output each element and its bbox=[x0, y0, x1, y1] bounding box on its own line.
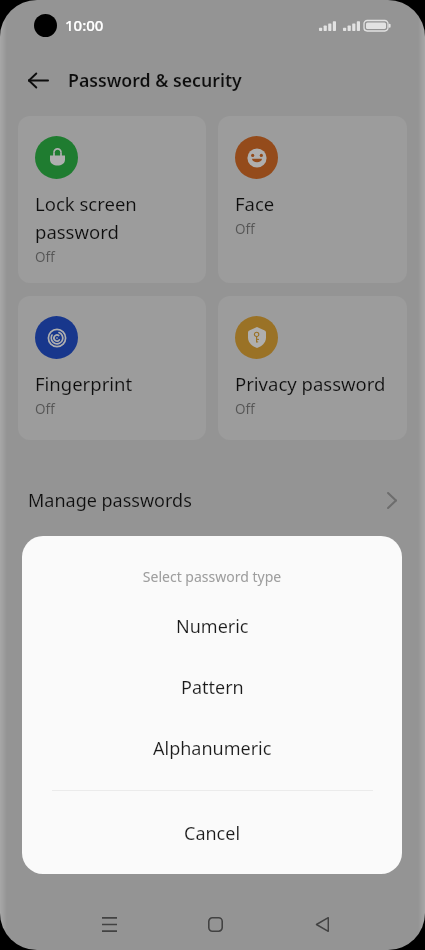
button[interactable]: Face bbox=[218, 116, 407, 283]
staticText: Off bbox=[235, 400, 255, 418]
staticText: Privacy password bbox=[235, 371, 386, 396]
button[interactable]: Privacy password bbox=[218, 296, 407, 440]
button[interactable]: Alphanumeric bbox=[22, 723, 402, 773]
staticText: Select password type bbox=[22, 567, 402, 586]
button[interactable]: Manage passwords bbox=[0, 478, 425, 522]
button[interactable]: Back bbox=[18, 60, 58, 100]
staticText: Cancel bbox=[184, 821, 241, 846]
staticText: Numeric bbox=[176, 614, 249, 639]
staticText: 10:00 bbox=[65, 15, 104, 35]
staticText: Password & security bbox=[68, 68, 242, 92]
button[interactable]: Fingerprint bbox=[18, 296, 206, 440]
staticText: Off bbox=[35, 400, 55, 418]
button[interactable]: Pattern bbox=[22, 662, 402, 712]
staticText: Fingerprint bbox=[35, 371, 133, 396]
staticText: Manage passwords bbox=[28, 488, 192, 513]
staticText: Alphanumeric bbox=[153, 736, 272, 761]
button[interactable]: Back bbox=[300, 902, 344, 946]
staticText: Pattern bbox=[181, 675, 244, 700]
staticText: Off bbox=[235, 220, 255, 238]
staticText: Lock screen password bbox=[35, 191, 137, 244]
button[interactable]: Lock screen password bbox=[18, 116, 206, 283]
button[interactable]: Recents bbox=[87, 902, 131, 946]
button[interactable]: Cancel bbox=[22, 808, 402, 858]
button[interactable]: Numeric bbox=[22, 601, 402, 651]
button[interactable]: Home bbox=[193, 902, 237, 946]
staticText: Face bbox=[235, 191, 275, 216]
staticText: Off bbox=[35, 248, 55, 266]
